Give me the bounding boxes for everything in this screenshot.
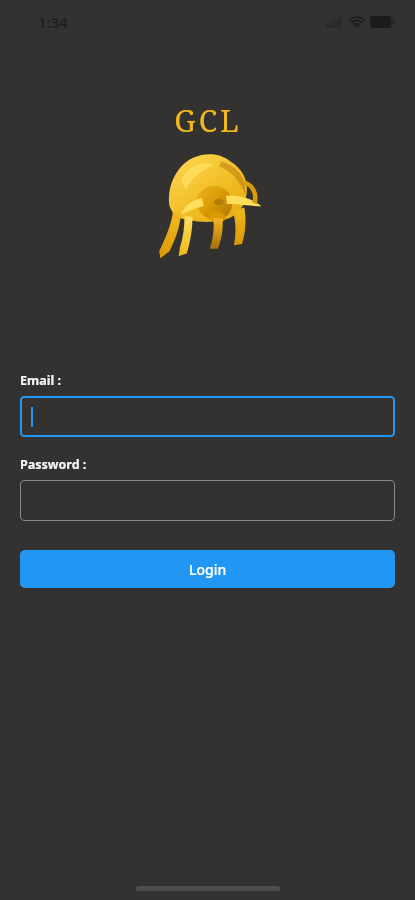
staticText: 1:34: [38, 12, 68, 32]
staticText: Email :: [20, 372, 61, 389]
staticText: Login: [189, 560, 227, 579]
staticText: Password :: [20, 456, 87, 473]
button[interactable]: [20, 480, 395, 521]
staticText: GCL: [174, 100, 242, 141]
button[interactable]: Login: [20, 550, 395, 588]
button[interactable]: [20, 396, 395, 437]
